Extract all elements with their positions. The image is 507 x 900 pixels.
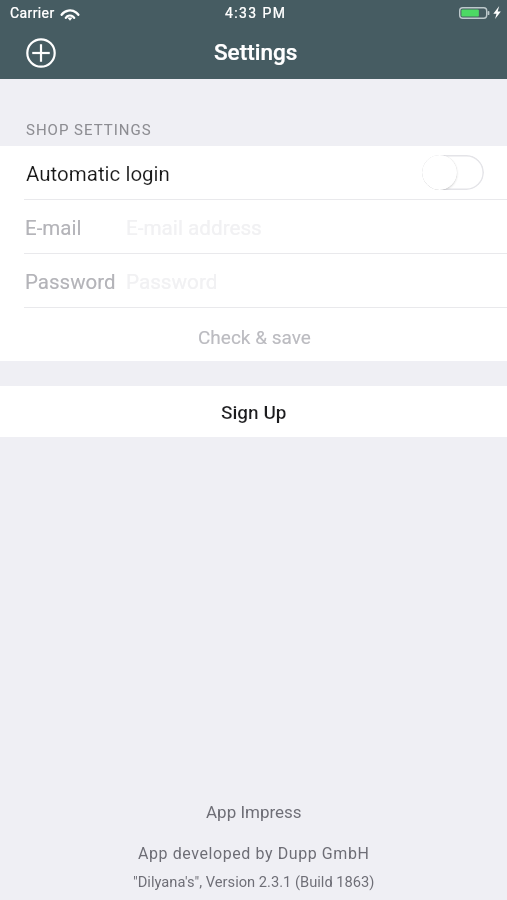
staticText: E-mail [25, 216, 82, 240]
button[interactable]: Sign Up [0, 386, 507, 437]
staticText: Carrier [10, 5, 55, 21]
staticText: Password [126, 270, 218, 294]
button[interactable]: Automatic login toggle [422, 155, 484, 190]
staticText: Check & save [198, 326, 311, 348]
staticText: Sign Up [221, 401, 287, 423]
staticText: "Dilyana's", Version 2.3.1 (Build 1863) [133, 873, 375, 890]
button[interactable]: App Impress [196, 799, 312, 825]
staticText: App Impress [206, 802, 302, 822]
staticText: App developed by Dupp GmbH [138, 844, 370, 863]
staticText: Settings [214, 39, 298, 65]
button[interactable]: Add [18, 30, 63, 75]
button[interactable]: E-mail [0, 200, 507, 253]
staticText: 4:33 PM [225, 5, 287, 21]
staticText: SHOP SETTINGS [26, 121, 152, 139]
staticText: Password [25, 270, 116, 294]
staticText: E-mail address [126, 216, 262, 240]
button[interactable]: Password [0, 254, 507, 307]
button[interactable]: Automatic login [0, 146, 507, 199]
staticText: Automatic login [26, 162, 170, 186]
button[interactable]: Check & save [0, 308, 507, 361]
